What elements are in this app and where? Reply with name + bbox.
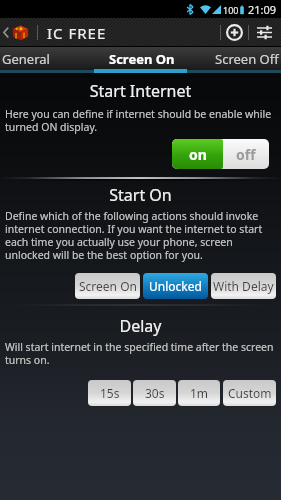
button[interactable]: Settings (249, 18, 280, 47)
staticText: General (2, 50, 50, 68)
button[interactable]: 1m (178, 380, 220, 406)
button[interactable]: Screen Off (197, 47, 281, 70)
button[interactable]: Up (0, 18, 30, 47)
button[interactable]: Unlocked (143, 273, 208, 299)
button[interactable]: With Delay (211, 273, 276, 299)
staticText: Here you can define if internet should b… (5, 107, 274, 134)
button[interactable]: Custom (223, 380, 276, 406)
staticText: 21:09 (248, 2, 277, 17)
staticText: Custom (228, 385, 272, 401)
staticText: 30s (145, 385, 165, 401)
button[interactable]: Screen On (92, 47, 192, 70)
staticText: With Delay (213, 278, 274, 294)
staticText: Unlocked (149, 278, 202, 294)
staticText: Screen On (109, 50, 175, 68)
staticText: Start On (0, 184, 281, 206)
button[interactable]: 30s (133, 380, 176, 406)
staticText: off (236, 145, 256, 164)
staticText: Delay (0, 315, 281, 337)
staticText: Screen On (79, 278, 137, 294)
staticText: 100 (223, 4, 239, 16)
staticText: Start Internet (0, 80, 281, 102)
other: Up (2, 26, 10, 39)
staticText: 1m (190, 385, 209, 401)
staticText: on (189, 145, 207, 164)
button[interactable]: 15s (88, 380, 131, 406)
staticText: IC FREE (47, 23, 107, 43)
button[interactable]: General (0, 47, 76, 70)
staticText: Define which of the following actions sh… (5, 209, 274, 262)
button[interactable]: on (172, 139, 269, 169)
button[interactable]: Add (221, 18, 248, 47)
button[interactable]: Screen On (75, 273, 140, 299)
staticText: Screen Off (215, 50, 279, 68)
staticText: Will start internet in the specified tim… (5, 340, 274, 367)
staticText: 15s (100, 385, 120, 401)
